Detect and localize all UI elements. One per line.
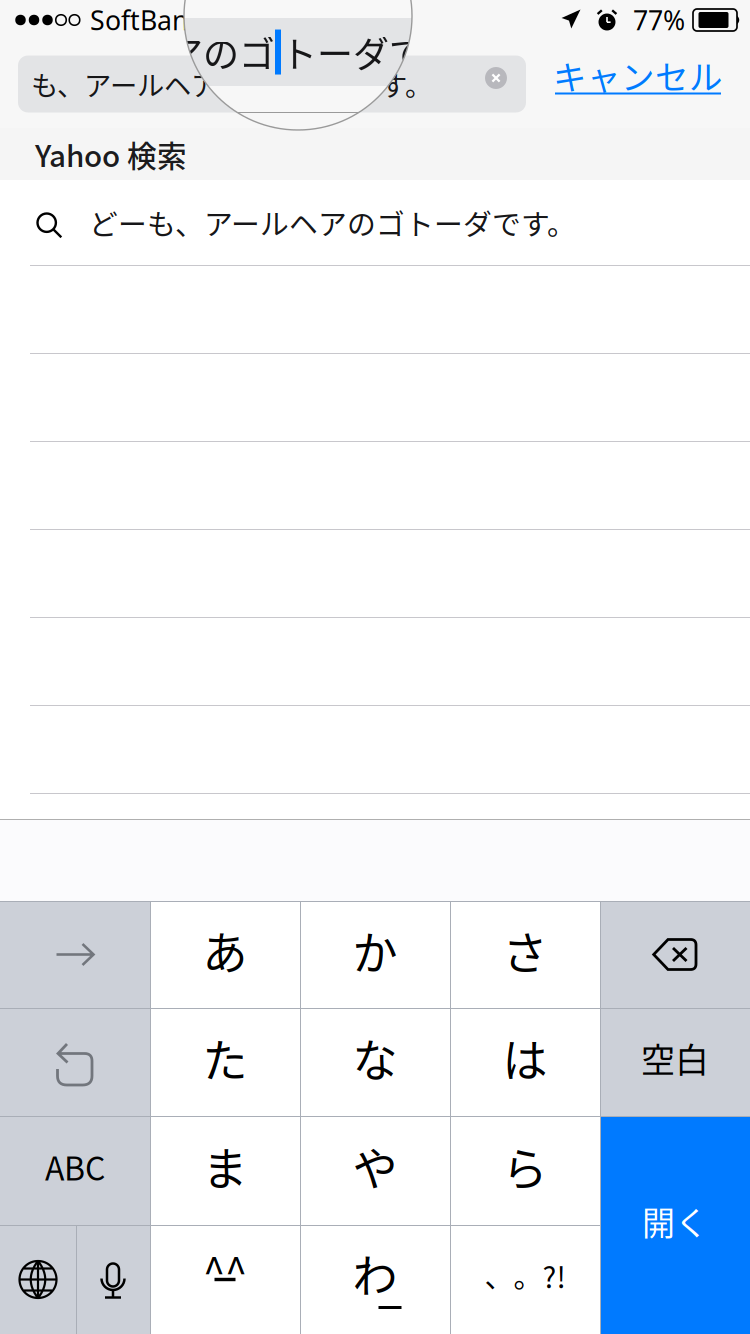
button[interactable]: わ	[300, 1225, 450, 1334]
staticText: は	[502, 1025, 547, 1091]
button[interactable]: Switch keyboard	[0, 1225, 76, 1334]
button[interactable]: な	[300, 1008, 450, 1116]
button[interactable]: は	[450, 1008, 600, 1116]
staticText: な	[352, 1025, 397, 1091]
staticText: Yahoo 検索	[35, 133, 187, 175]
staticText: アのゴ	[167, 26, 275, 78]
button[interactable]	[0, 901, 150, 1008]
staticText: トーダで	[281, 26, 425, 78]
staticText: ま	[202, 1134, 247, 1199]
staticText: た	[202, 1025, 247, 1091]
button[interactable]: Dictation	[76, 1225, 150, 1334]
staticText: ABC	[45, 1143, 105, 1190]
button[interactable]: ABC	[0, 1116, 150, 1225]
staticText: や	[352, 1134, 397, 1199]
staticText: キャンセル	[553, 51, 723, 99]
button[interactable]	[0, 1008, 150, 1116]
staticText: 開く	[642, 1197, 708, 1245]
button[interactable]	[600, 901, 750, 1008]
staticText: 空白	[641, 1033, 709, 1083]
button[interactable]: どーも、アールヘアのゴトーダです。	[0, 180, 750, 266]
button[interactable]: キャンセル	[526, 55, 750, 112]
button[interactable]: 開く	[600, 1116, 750, 1334]
staticText: 77%	[633, 2, 685, 38]
staticText: あ	[202, 918, 247, 983]
button[interactable]: さ	[450, 901, 600, 1008]
button[interactable]: 空白	[600, 1008, 750, 1116]
button[interactable]: た	[150, 1008, 300, 1116]
button[interactable]: Clear text	[471, 49, 521, 106]
staticText: 、。?!	[484, 1254, 565, 1296]
button[interactable]: や	[300, 1116, 450, 1225]
staticText: ら	[502, 1134, 547, 1199]
staticText: ^^	[203, 1240, 247, 1298]
button[interactable]: ら	[450, 1116, 600, 1225]
staticText: どーも、アールヘアのゴトーダです。	[89, 202, 576, 243]
staticText: か	[352, 918, 397, 983]
button[interactable]: か	[300, 901, 450, 1008]
staticText: さ	[502, 918, 547, 983]
button[interactable]: ^^	[150, 1225, 300, 1334]
staticText: SoftBank	[90, 2, 202, 38]
button[interactable]: あ	[150, 901, 300, 1008]
staticText: わ	[352, 1241, 397, 1306]
staticText: も、アールヘアのゴトーダです。	[31, 64, 432, 104]
button[interactable]: 、。?!	[450, 1225, 600, 1334]
button[interactable]: ま	[150, 1116, 300, 1225]
